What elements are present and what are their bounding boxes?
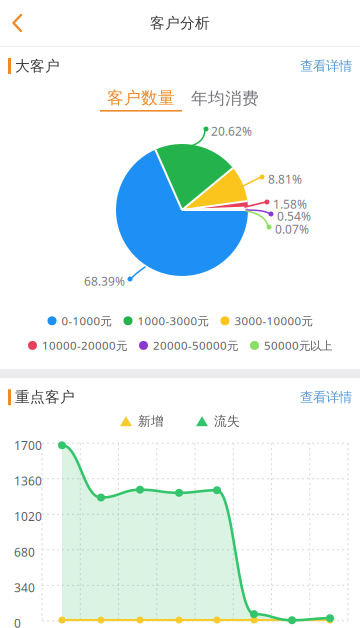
button[interactable]: Back <box>0 0 36 46</box>
staticText: 1000-3000元 <box>137 313 208 329</box>
button[interactable]: 年均消费 <box>184 88 266 114</box>
staticText: 1020 <box>14 508 42 525</box>
button[interactable]: 客户数量 <box>100 88 182 114</box>
staticText: 0-1000元 <box>61 313 111 329</box>
staticText: 查看详情 <box>300 389 352 406</box>
staticText: 680 <box>14 544 35 560</box>
staticText: 20.62% <box>211 123 252 139</box>
staticText: 0.54% <box>277 208 311 224</box>
staticText: 8.81% <box>268 171 302 187</box>
staticText: 50000元以上 <box>264 338 332 353</box>
staticText: 3000-10000元 <box>234 313 312 329</box>
staticText: 1360 <box>14 473 42 489</box>
staticText: 1700 <box>14 437 42 453</box>
staticText: 客户分析 <box>150 14 210 32</box>
staticText: 年均消费 <box>191 88 259 109</box>
staticText: 0.07% <box>275 221 309 237</box>
button[interactable]: 查看详情 <box>300 54 352 78</box>
staticText: 大客户 <box>15 57 60 75</box>
staticText: 流失 <box>214 413 240 429</box>
staticText: 客户数量 <box>107 87 175 108</box>
staticText: 新增 <box>138 413 164 429</box>
staticText: 1.58% <box>273 196 307 212</box>
staticText: 10000-20000元 <box>42 338 127 353</box>
staticText: 0 <box>14 615 21 628</box>
staticText: 20000-50000元 <box>153 338 238 353</box>
staticText: 重点客户 <box>15 388 75 406</box>
staticText: 查看详情 <box>300 58 352 74</box>
staticText: 68.39% <box>84 273 125 289</box>
staticText: 340 <box>14 579 35 596</box>
button[interactable]: 查看详情 <box>300 385 352 410</box>
